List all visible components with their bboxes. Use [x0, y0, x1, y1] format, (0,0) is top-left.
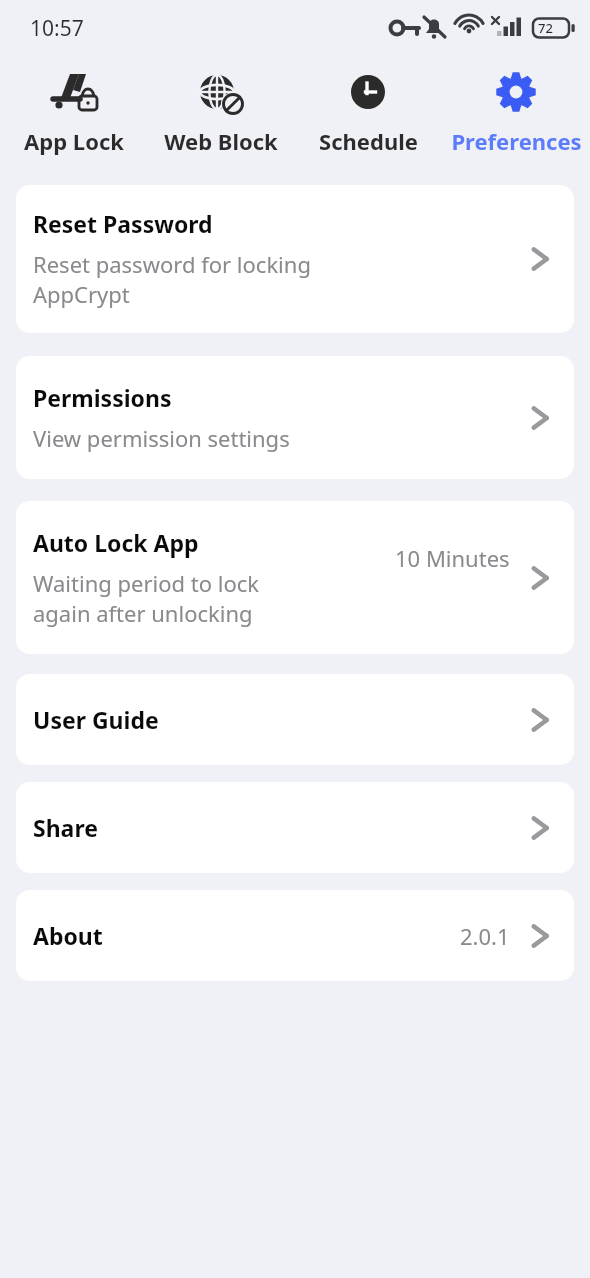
staticText: Reset password for locking AppCrypt [33, 249, 311, 310]
staticText: Web Block [164, 126, 278, 156]
staticText: 10:57 [30, 14, 84, 43]
staticText: Preferences [451, 126, 582, 156]
staticText: 10 Minutes [395, 543, 510, 573]
staticText: Permissions [33, 382, 172, 413]
staticText: Reset Password [33, 208, 213, 239]
button[interactable]: User Guide [16, 674, 574, 765]
staticText: 2.0.1 [460, 921, 510, 951]
staticText: About [33, 920, 103, 951]
button[interactable]: Share [16, 782, 574, 873]
staticText: Auto Lock App [33, 527, 199, 558]
staticText: User Guide [33, 704, 159, 735]
button[interactable]: Web Block [147, 56, 294, 172]
button[interactable]: Permissions [16, 356, 574, 479]
button[interactable]: Reset Password [16, 185, 574, 333]
staticText: App Lock [24, 126, 124, 156]
button[interactable]: App Lock [0, 56, 147, 172]
button[interactable]: About [16, 890, 574, 981]
staticText: Share [33, 812, 98, 843]
button[interactable]: Schedule [294, 56, 442, 172]
staticText: Waiting period to lock again after unloc… [33, 568, 260, 629]
staticText: Schedule [319, 126, 418, 156]
staticText: View permission settings [33, 423, 290, 453]
button[interactable]: Preferences [442, 56, 590, 172]
button[interactable]: Auto Lock App [16, 501, 574, 654]
staticText: 72 [538, 19, 553, 37]
